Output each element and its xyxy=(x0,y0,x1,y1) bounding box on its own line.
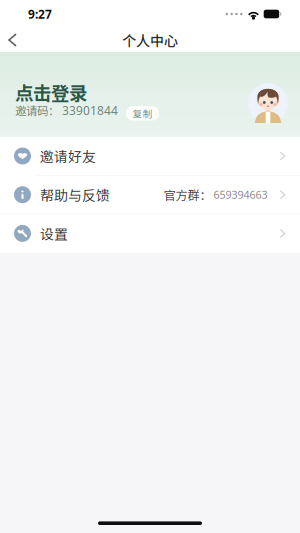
staticText: 邀请好友 xyxy=(40,146,96,166)
button[interactable]: 复制 xyxy=(126,106,159,121)
staticText: 官方群： xyxy=(163,186,211,204)
staticText: 复制 xyxy=(132,106,152,120)
button[interactable]: 帮助与反馈 xyxy=(0,176,300,214)
staticText: 点击登录 xyxy=(15,79,87,106)
staticText: 帮助与反馈 xyxy=(40,185,110,205)
button[interactable]: Back xyxy=(0,28,25,52)
button[interactable]: 设置 xyxy=(0,214,300,252)
button[interactable]: 邀请好友 xyxy=(0,137,300,175)
staticText: 设置 xyxy=(40,223,68,243)
staticText: 邀请码： xyxy=(15,102,59,119)
staticText: 33901844 xyxy=(62,102,118,118)
staticText: 个人中心 xyxy=(122,30,178,50)
staticText: 659394663 xyxy=(213,188,267,202)
staticText: 9:27 xyxy=(28,6,52,22)
